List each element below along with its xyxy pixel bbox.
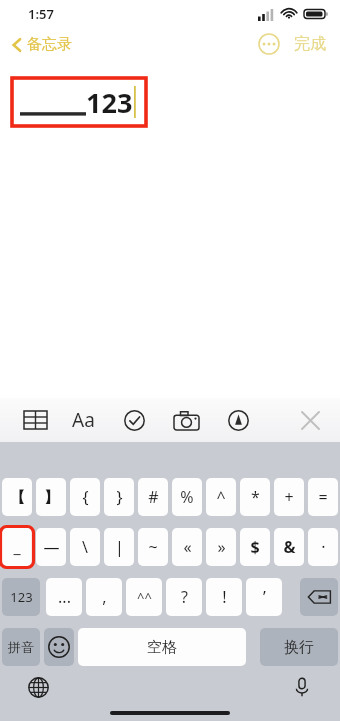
staticText: ^^ [137, 588, 152, 606]
staticText: 】 [44, 488, 59, 507]
staticText: 1:57 [28, 5, 54, 23]
button[interactable]: Aa [68, 403, 99, 437]
button[interactable]: | [104, 528, 134, 566]
staticText: ^ [216, 486, 226, 508]
button[interactable]: , [86, 578, 122, 616]
staticText: % [180, 486, 194, 508]
button[interactable]: 换行 [260, 628, 338, 666]
button[interactable]: ^ [206, 478, 236, 516]
button[interactable]: 123 [2, 578, 40, 616]
button[interactable]: · [308, 528, 338, 566]
button[interactable]: ^^ [126, 578, 162, 616]
button[interactable]: = [308, 478, 338, 516]
button[interactable]: Camera [169, 403, 203, 437]
staticText: ! [222, 586, 227, 608]
button[interactable]: * [240, 478, 270, 516]
button[interactable]: 完成 [294, 34, 326, 54]
button[interactable]: { [70, 478, 100, 516]
button[interactable]: Emoji [44, 628, 74, 666]
button[interactable]: « [172, 528, 202, 566]
button[interactable]: ... [46, 578, 82, 616]
button[interactable]: ’ [246, 578, 282, 616]
staticText: 空格 [147, 638, 177, 657]
staticText: & [283, 536, 296, 558]
staticText: ’ [263, 586, 266, 608]
button[interactable]: — [36, 528, 66, 566]
staticText: 备忘录 [27, 35, 72, 54]
staticText: 换行 [284, 638, 314, 657]
button[interactable]: \ [70, 528, 100, 566]
button[interactable]: 】 [36, 478, 66, 516]
button[interactable]: 空格 [78, 628, 246, 666]
staticText: * [251, 486, 260, 508]
staticText: # [148, 486, 159, 508]
staticText: | [115, 536, 124, 558]
staticText: Aa [72, 407, 95, 433]
staticText: — [43, 536, 60, 558]
staticText: « [183, 536, 192, 558]
staticText: \ [82, 536, 88, 558]
staticText: ... [58, 586, 71, 608]
staticText: 拼音 [8, 639, 34, 655]
staticText: · [321, 536, 326, 558]
button[interactable]: _ [2, 528, 32, 566]
button[interactable]: & [274, 528, 304, 566]
button[interactable]: More options [258, 33, 280, 55]
staticText: $ [250, 536, 260, 558]
staticText: 123 [86, 84, 133, 121]
staticText: ? [181, 586, 188, 608]
staticText: , [102, 586, 107, 608]
button[interactable]: » [206, 528, 236, 566]
button[interactable]: Markup [221, 403, 255, 437]
button[interactable]: ! [206, 578, 242, 616]
button[interactable]: Backspace [300, 578, 338, 616]
staticText: } [116, 486, 123, 508]
staticText: _ [13, 536, 21, 558]
button[interactable]: ? [166, 578, 202, 616]
button[interactable]: Dictation [288, 673, 316, 701]
staticText: ~ [148, 536, 158, 558]
button[interactable]: } [104, 478, 134, 516]
staticText: = [318, 486, 328, 508]
button[interactable]: # [138, 478, 168, 516]
button[interactable]: + [274, 478, 304, 516]
staticText: + [284, 486, 294, 508]
button[interactable]: % [172, 478, 202, 516]
button[interactable]: Table [18, 403, 52, 437]
staticText: 123 [10, 588, 33, 606]
button[interactable]: ~ [138, 528, 168, 566]
staticText: 【 [10, 488, 25, 507]
staticText: » [217, 536, 226, 558]
button[interactable]: Close [294, 404, 326, 436]
button[interactable]: 备忘录 [10, 35, 72, 54]
staticText: { [82, 486, 89, 508]
button[interactable]: $ [240, 528, 270, 566]
button[interactable]: 【 [2, 478, 32, 516]
button[interactable]: 拼音 [2, 628, 40, 666]
button[interactable]: Checklist [117, 403, 151, 437]
button[interactable]: Switch keyboard [24, 673, 52, 701]
staticText: 完成 [294, 34, 326, 54]
